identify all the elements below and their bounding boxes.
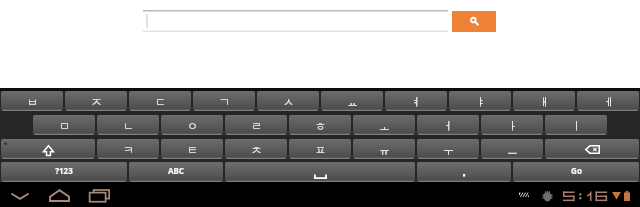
staticText: ㅠ bbox=[379, 143, 390, 157]
staticText: ㅏ bbox=[507, 119, 518, 133]
staticText: ㅎ bbox=[315, 119, 326, 133]
staticText: ㅍ bbox=[315, 143, 326, 157]
staticText: ㅛ bbox=[347, 95, 358, 109]
button[interactable]: ㅐ bbox=[513, 91, 575, 111]
staticText: ㄷ bbox=[155, 95, 166, 109]
staticText: ㅁ bbox=[59, 119, 70, 133]
button[interactable]: ㄷ bbox=[129, 91, 191, 111]
staticText: ㄹ bbox=[251, 119, 262, 133]
button[interactable]: ㅛ bbox=[321, 91, 383, 111]
button[interactable] bbox=[143, 10, 448, 32]
button[interactable]: ㅑ bbox=[449, 91, 511, 111]
button[interactable]: ㅠ bbox=[353, 139, 415, 159]
button[interactable]: ㅅ bbox=[257, 91, 319, 111]
button[interactable]: ㅔ bbox=[577, 91, 639, 111]
staticText: ㅇ bbox=[187, 119, 198, 133]
button[interactable]: Recent apps bbox=[85, 182, 114, 207]
staticText: ㅜ bbox=[443, 143, 454, 157]
button[interactable]: ㅗ bbox=[353, 115, 415, 135]
button[interactable]: ㄴ bbox=[97, 115, 159, 135]
staticText: Go bbox=[571, 165, 582, 176]
button[interactable]: Space bbox=[225, 162, 415, 182]
staticText: ㅐ bbox=[539, 95, 550, 109]
button[interactable]: ㅂ bbox=[1, 91, 63, 111]
button[interactable]: ㅏ bbox=[481, 115, 543, 135]
staticText: ㅕ bbox=[411, 95, 422, 109]
button[interactable]: ㅣ bbox=[545, 115, 607, 135]
button[interactable]: ㅍ bbox=[289, 139, 351, 159]
staticText: ㅋ bbox=[123, 143, 134, 157]
button[interactable]: ㅌ bbox=[161, 139, 223, 159]
button[interactable]: Back bbox=[5, 182, 34, 207]
button[interactable]: Symbols bbox=[1, 162, 127, 182]
staticText: ㅊ bbox=[251, 143, 262, 157]
staticText: ㅡ bbox=[507, 143, 518, 157]
staticText: ㅗ bbox=[379, 119, 390, 133]
staticText: ㅣ bbox=[571, 119, 582, 133]
staticText: ㄱ bbox=[219, 95, 230, 109]
button[interactable]: ㄹ bbox=[225, 115, 287, 135]
button[interactable]: Search bbox=[452, 11, 496, 32]
button[interactable]: ㅊ bbox=[225, 139, 287, 159]
staticText: ABC bbox=[168, 165, 184, 176]
staticText: ㅑ bbox=[475, 95, 486, 109]
button[interactable]: ㅇ bbox=[161, 115, 223, 135]
button[interactable]: Home bbox=[45, 182, 74, 207]
button[interactable]: Period bbox=[417, 162, 511, 182]
button[interactable]: ㅎ bbox=[289, 115, 351, 135]
staticText: ㅈ bbox=[91, 95, 102, 109]
staticText: ㅔ bbox=[603, 95, 614, 109]
button[interactable]: ㅓ bbox=[417, 115, 479, 135]
staticText: ㅅ bbox=[283, 95, 294, 109]
button[interactable]: ㅜ bbox=[417, 139, 479, 159]
staticText: ㅂ bbox=[27, 95, 38, 109]
button[interactable]: ㅋ bbox=[97, 139, 159, 159]
button[interactable]: ㅁ bbox=[33, 115, 95, 135]
button[interactable]: Go bbox=[513, 162, 639, 182]
staticText: ㄴ bbox=[123, 119, 134, 133]
button[interactable]: Latin letters bbox=[129, 162, 223, 182]
staticText: ?123 bbox=[55, 165, 73, 176]
button[interactable]: ㄱ bbox=[193, 91, 255, 111]
button[interactable]: Backspace bbox=[545, 139, 639, 159]
button[interactable]: ㅕ bbox=[385, 91, 447, 111]
staticText: ㅓ bbox=[443, 119, 454, 133]
button[interactable]: ㅡ bbox=[481, 139, 543, 159]
button[interactable]: ㅈ bbox=[65, 91, 127, 111]
button[interactable]: Shift bbox=[1, 139, 95, 159]
staticText: ㅌ bbox=[187, 143, 198, 157]
